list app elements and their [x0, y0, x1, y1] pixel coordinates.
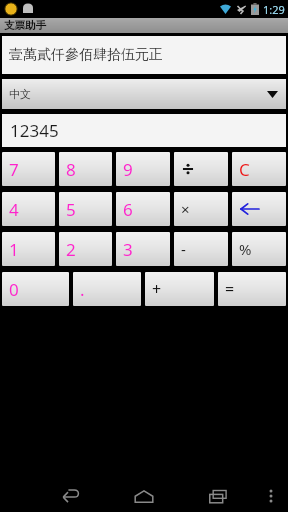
staticText: 1: [9, 238, 19, 261]
button[interactable]: =: [218, 272, 286, 306]
staticText: 8: [66, 158, 76, 181]
staticText: 壹萬貳仟參佰肆拾伍元正: [9, 46, 163, 64]
button[interactable]: Divide: [174, 152, 228, 186]
staticText: -: [181, 239, 186, 259]
staticText: 3: [123, 238, 133, 261]
staticText: 5: [66, 198, 76, 221]
button[interactable]: 2: [59, 232, 112, 266]
button[interactable]: 5: [59, 192, 112, 226]
staticText: .: [80, 278, 85, 301]
button[interactable]: 6: [116, 192, 170, 226]
button[interactable]: 12345: [2, 114, 286, 147]
staticText: +: [152, 278, 162, 300]
staticText: 0: [9, 278, 19, 301]
staticText: 支票助手: [4, 19, 46, 32]
button[interactable]: Back: [38, 480, 102, 512]
button[interactable]: 9: [116, 152, 170, 186]
button[interactable]: Recent apps: [186, 480, 250, 512]
button[interactable]: 1: [2, 232, 55, 266]
button[interactable]: 7: [2, 152, 55, 186]
staticText: C: [239, 158, 250, 181]
button[interactable]: More options: [254, 480, 288, 512]
button[interactable]: C: [232, 152, 286, 186]
staticText: ×: [181, 199, 190, 219]
button[interactable]: -: [174, 232, 228, 266]
staticText: 1:29: [263, 2, 285, 17]
button[interactable]: 中文: [2, 79, 286, 109]
button[interactable]: %: [232, 232, 286, 266]
staticText: 9: [123, 158, 133, 181]
staticText: 6: [123, 198, 133, 221]
button[interactable]: 8: [59, 152, 112, 186]
button[interactable]: 0: [2, 272, 69, 306]
button[interactable]: 壹萬貳仟參佰肆拾伍元正: [2, 36, 286, 74]
button[interactable]: .: [73, 272, 141, 306]
staticText: 7: [9, 158, 19, 181]
button[interactable]: 4: [2, 192, 55, 226]
button[interactable]: ×: [174, 192, 228, 226]
staticText: 12345: [10, 119, 59, 142]
staticText: 中文: [9, 87, 31, 101]
button[interactable]: 3: [116, 232, 170, 266]
button[interactable]: +: [145, 272, 214, 306]
staticText: =: [225, 278, 235, 300]
staticText: %: [239, 239, 252, 259]
button[interactable]: Backspace: [232, 192, 286, 226]
staticText: 2: [66, 238, 76, 261]
button[interactable]: Home: [112, 480, 176, 512]
staticText: 4: [9, 198, 19, 221]
